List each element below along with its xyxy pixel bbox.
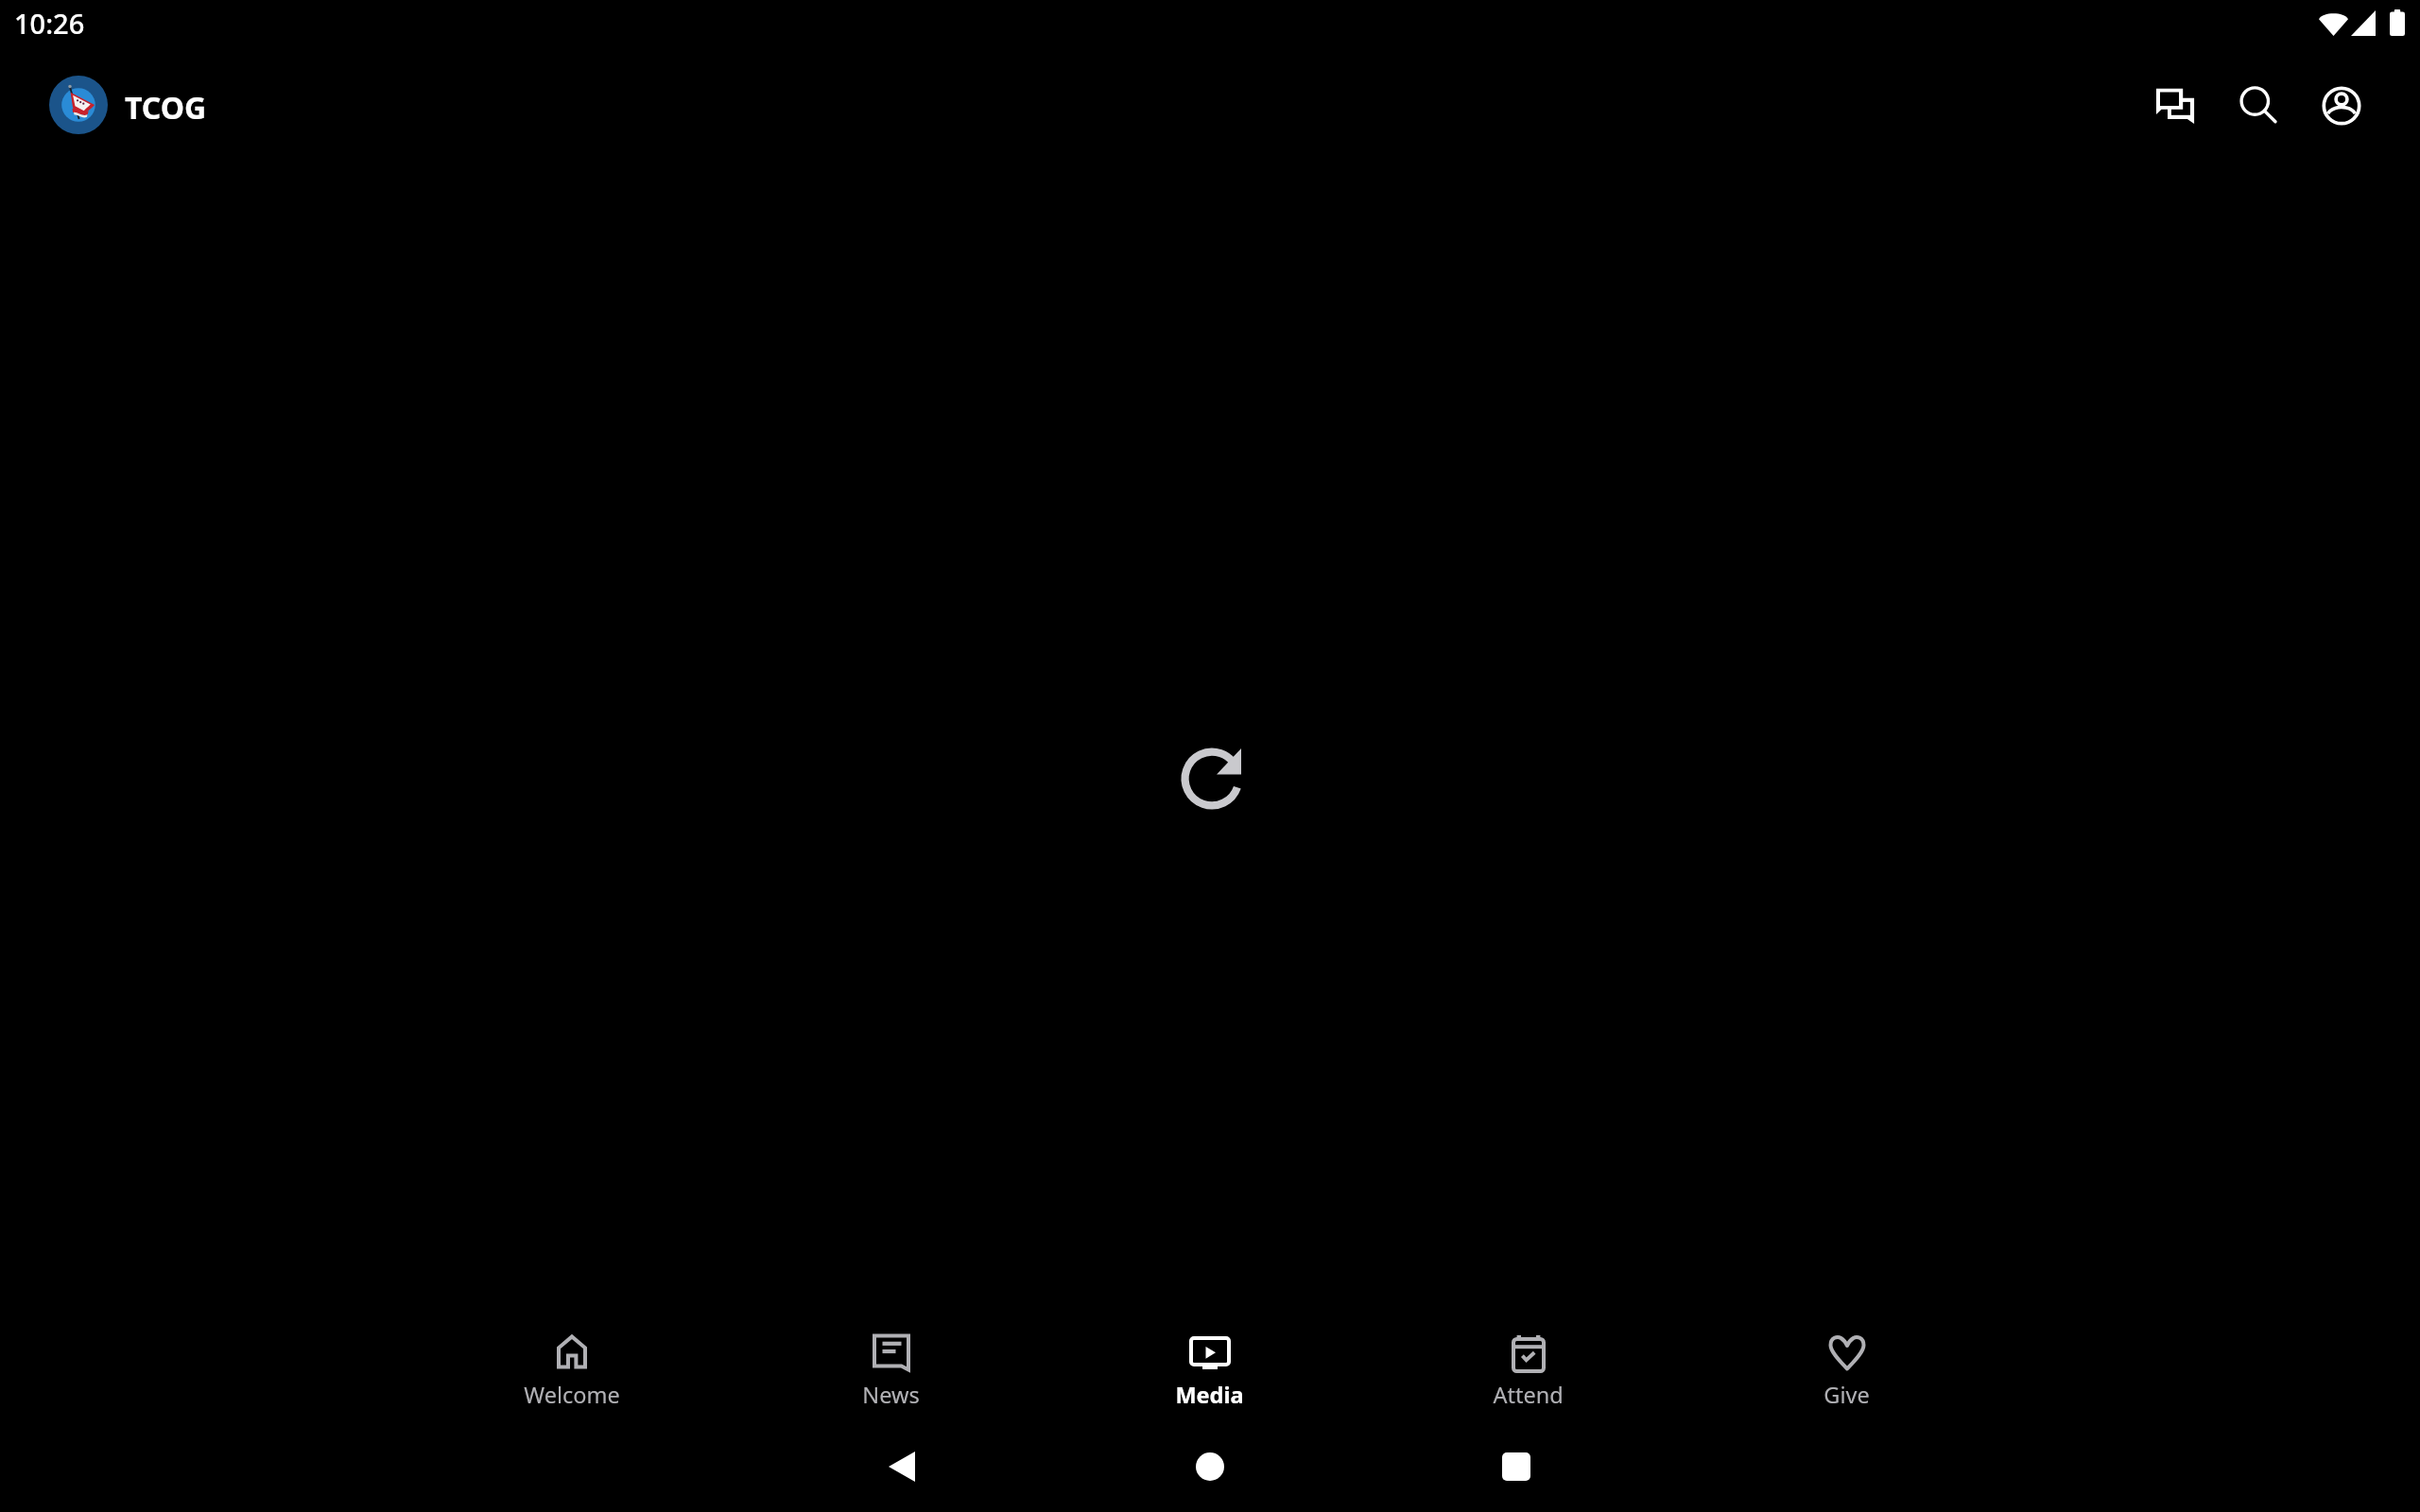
button[interactable]: TCOG bbox=[49, 76, 207, 134]
staticText: Give bbox=[1824, 1380, 1870, 1410]
button[interactable]: News bbox=[732, 1314, 1050, 1416]
button[interactable]: Welcome bbox=[412, 1314, 732, 1416]
staticText: Attend bbox=[1493, 1380, 1564, 1410]
button[interactable]: Give bbox=[1687, 1314, 2006, 1416]
button[interactable]: Media bbox=[1050, 1314, 1369, 1416]
staticText: TCOG bbox=[125, 87, 207, 129]
staticText: Welcome bbox=[524, 1380, 620, 1410]
button[interactable]: Attend bbox=[1369, 1314, 1687, 1416]
staticText: News bbox=[862, 1380, 920, 1410]
button[interactable]: Account bbox=[2300, 64, 2383, 147]
staticText: Media bbox=[1175, 1380, 1244, 1410]
button[interactable]: Recent apps bbox=[1441, 1421, 1592, 1512]
button[interactable]: Back bbox=[826, 1421, 977, 1512]
staticText: 10:26 bbox=[14, 5, 85, 42]
button[interactable]: Reload bbox=[1162, 729, 1262, 829]
button[interactable]: Home bbox=[1134, 1421, 1286, 1512]
button[interactable]: Chat bbox=[2134, 64, 2217, 147]
button[interactable]: Search bbox=[2217, 64, 2300, 147]
